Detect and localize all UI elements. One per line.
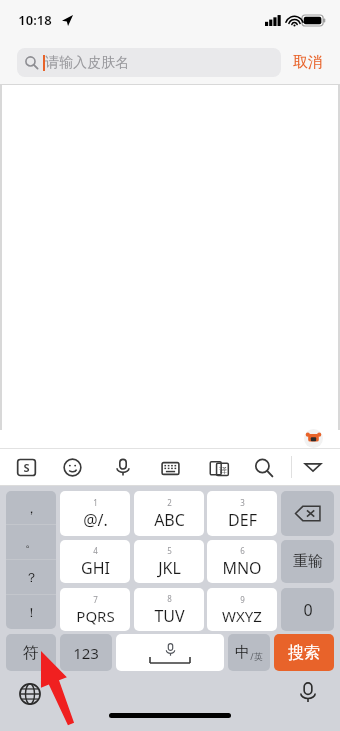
staticText: PQRS [76, 606, 115, 626]
staticText: 译 [219, 465, 227, 475]
button[interactable]: Sogou [304, 429, 323, 448]
button[interactable]: 中 [228, 634, 270, 671]
button[interactable]: 3 [207, 491, 277, 536]
staticText: 7 [93, 594, 98, 605]
staticText: 4 [93, 545, 98, 556]
staticText: ？ [25, 569, 38, 585]
staticText: 0 [303, 599, 313, 621]
staticText: GHI [81, 557, 110, 579]
button[interactable]: 5 [134, 540, 204, 583]
staticText: ， [25, 500, 38, 516]
staticText: TUV [154, 605, 185, 627]
button[interactable]: Sogou keyboard [16, 457, 37, 478]
button[interactable]: Search [254, 458, 274, 478]
button[interactable]: ？ [6, 560, 56, 594]
button[interactable]: 0 [281, 588, 334, 631]
button[interactable]: Backspace [281, 491, 334, 536]
staticText: 9 [240, 594, 245, 605]
button[interactable]: Space [116, 634, 224, 671]
staticText: 符 [23, 643, 39, 663]
staticText: /英 [250, 650, 263, 662]
button[interactable]: 请输入皮肤名 [17, 48, 281, 77]
staticText: 123 [73, 643, 99, 663]
button[interactable]: 重输 [281, 540, 334, 583]
staticText: 中 [235, 643, 250, 662]
staticText: 8 [167, 593, 172, 604]
staticText: 6 [240, 545, 245, 556]
button[interactable]: 8 [134, 588, 204, 631]
button[interactable]: Hide keyboard [302, 460, 324, 474]
staticText: 搜索 [288, 643, 320, 663]
staticText: 重输 [293, 552, 323, 571]
staticText: MNO [222, 557, 262, 579]
staticText: @/. [83, 509, 108, 531]
staticText: JKL [158, 557, 181, 579]
button[interactable]: 符 [6, 634, 56, 671]
staticText: WXYZ [222, 606, 262, 626]
staticText: 请输入皮肤名 [45, 54, 129, 72]
staticText: 10:18 [18, 11, 52, 29]
button[interactable]: Voice input [296, 680, 320, 704]
button[interactable]: 6 [207, 540, 277, 583]
button[interactable]: ！ [6, 595, 56, 629]
staticText: 3 [240, 497, 245, 508]
staticText: ！ [25, 604, 38, 620]
button[interactable]: 4 [60, 540, 130, 583]
button[interactable]: Language [18, 682, 42, 706]
staticText: 2 [167, 497, 172, 508]
staticText: 1 [93, 497, 98, 508]
button[interactable]: Keyboard layout [160, 458, 181, 479]
staticText: S [23, 460, 30, 475]
button[interactable]: 1 [60, 491, 130, 536]
button[interactable]: 。 [6, 525, 56, 559]
staticText: DEF [228, 509, 257, 531]
button[interactable]: 7 [60, 588, 130, 631]
button[interactable]: 2 [134, 491, 204, 536]
staticText: ABC [154, 509, 185, 531]
button[interactable]: 9 [207, 588, 277, 631]
button[interactable]: ， [6, 491, 56, 524]
button[interactable]: 取消 [287, 47, 329, 78]
button[interactable]: Voice [113, 457, 133, 477]
staticText: 。 [25, 534, 38, 550]
staticText: 5 [167, 545, 172, 556]
staticText: 取消 [293, 53, 323, 72]
button[interactable]: 搜索 [274, 634, 334, 671]
button[interactable]: 123 [60, 634, 112, 671]
button[interactable]: Emoji [63, 458, 82, 477]
button[interactable]: Translate [209, 458, 230, 479]
